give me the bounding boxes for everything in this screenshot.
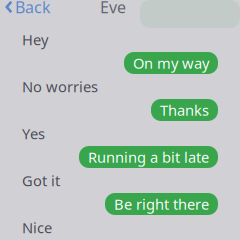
staticText: Nice xyxy=(22,218,52,237)
staticText: Got it xyxy=(22,171,60,190)
staticText: Eve xyxy=(100,0,126,18)
staticText: No worries xyxy=(22,77,98,96)
button[interactable]: Back xyxy=(0,0,51,18)
button[interactable]: Thanks xyxy=(151,99,218,121)
staticText: Be right there xyxy=(114,194,209,214)
staticText: Hey xyxy=(22,30,48,49)
staticText: Thanks xyxy=(160,100,209,120)
button[interactable]: On my way xyxy=(124,52,218,74)
button[interactable]: Running a bit late xyxy=(79,146,218,168)
staticText: Running a bit late xyxy=(88,147,209,167)
staticText: Yes xyxy=(22,124,45,143)
button[interactable]: Be right there xyxy=(105,193,218,215)
staticText: Back xyxy=(15,0,51,18)
staticText: On my way xyxy=(133,53,209,73)
